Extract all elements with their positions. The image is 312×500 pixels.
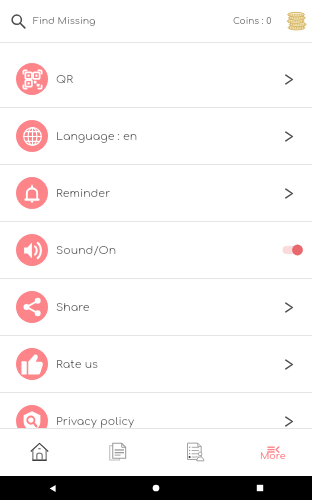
button[interactable]: Open	[285, 416, 293, 427]
button[interactable]: Search	[9, 12, 27, 30]
staticText: Sound/On	[56, 244, 117, 256]
button[interactable]: Coins	[286, 11, 307, 32]
button[interactable]: Open	[285, 188, 293, 199]
staticText: QR	[56, 73, 73, 85]
button[interactable]: Sound toggle	[273, 242, 303, 258]
staticText: Privacy policy	[56, 415, 135, 427]
staticText: Coins : 0	[233, 16, 272, 26]
staticText: Share	[56, 301, 90, 313]
button[interactable]: Privacy policy	[0, 393, 312, 428]
button[interactable]: Open	[285, 131, 293, 142]
button[interactable]: Sound/On	[0, 222, 312, 278]
button[interactable]: QR	[0, 51, 312, 107]
button[interactable]: Reports	[156, 429, 234, 476]
button[interactable]: Open	[285, 74, 293, 85]
button[interactable]: Documents	[78, 429, 156, 476]
staticText: Find Missing	[33, 16, 96, 27]
button[interactable]: Share	[0, 279, 312, 335]
button[interactable]: Home	[0, 429, 78, 476]
staticText: Rate us	[56, 358, 99, 370]
button[interactable]: More	[234, 429, 312, 476]
button[interactable]: Language : en	[0, 108, 312, 164]
staticText: More	[260, 451, 286, 462]
button[interactable]: Rate us	[0, 336, 312, 392]
staticText: Reminder	[56, 187, 111, 199]
button[interactable]: Reminder	[0, 165, 312, 221]
button[interactable]: Open	[285, 359, 293, 370]
staticText: Language : en	[56, 130, 138, 142]
button[interactable]: Open	[285, 302, 293, 313]
